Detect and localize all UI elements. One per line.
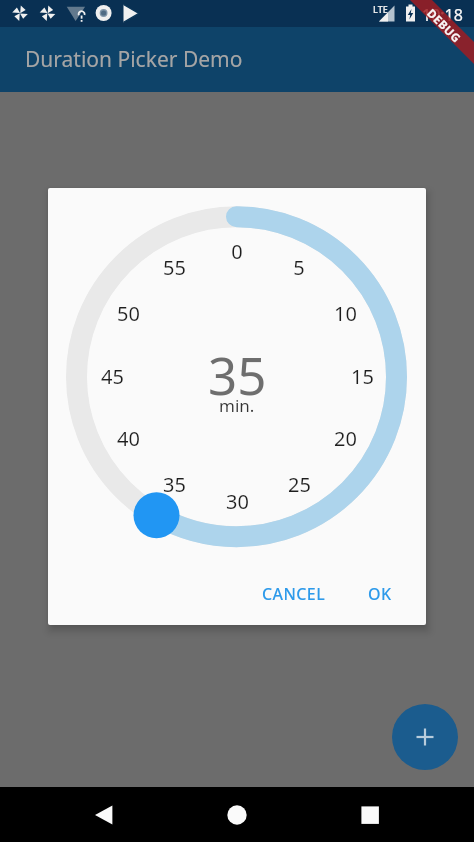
staticText: 50 <box>117 300 140 327</box>
staticText: OK <box>368 583 392 605</box>
staticText: 55 <box>163 254 186 281</box>
staticText: 20 <box>334 425 357 452</box>
staticText: 0 <box>231 238 243 265</box>
staticText: 35 <box>163 471 186 498</box>
button[interactable]: CANCEL <box>254 577 334 611</box>
staticText: min. <box>219 394 255 417</box>
staticText: 15 <box>351 363 374 390</box>
staticText: 25 <box>288 471 311 498</box>
staticText: 10 <box>334 300 357 327</box>
button[interactable]: Back <box>84 795 124 835</box>
staticText: Duration Picker Demo <box>25 45 243 74</box>
staticText: 30 <box>226 488 249 515</box>
staticText: 35 <box>208 340 267 409</box>
staticText: DEBUG <box>423 5 464 46</box>
button[interactable]: Recent apps <box>350 795 390 835</box>
button[interactable]: OK <box>360 577 400 611</box>
staticText: 5 <box>293 254 305 281</box>
button[interactable]: Home <box>217 795 257 835</box>
staticText: CANCEL <box>262 583 326 605</box>
button[interactable]: Add <box>392 704 458 770</box>
staticText: 40 <box>117 425 140 452</box>
staticText: LTE <box>373 3 388 15</box>
staticText: 45 <box>101 363 124 390</box>
staticText: 10:18 <box>422 4 463 26</box>
